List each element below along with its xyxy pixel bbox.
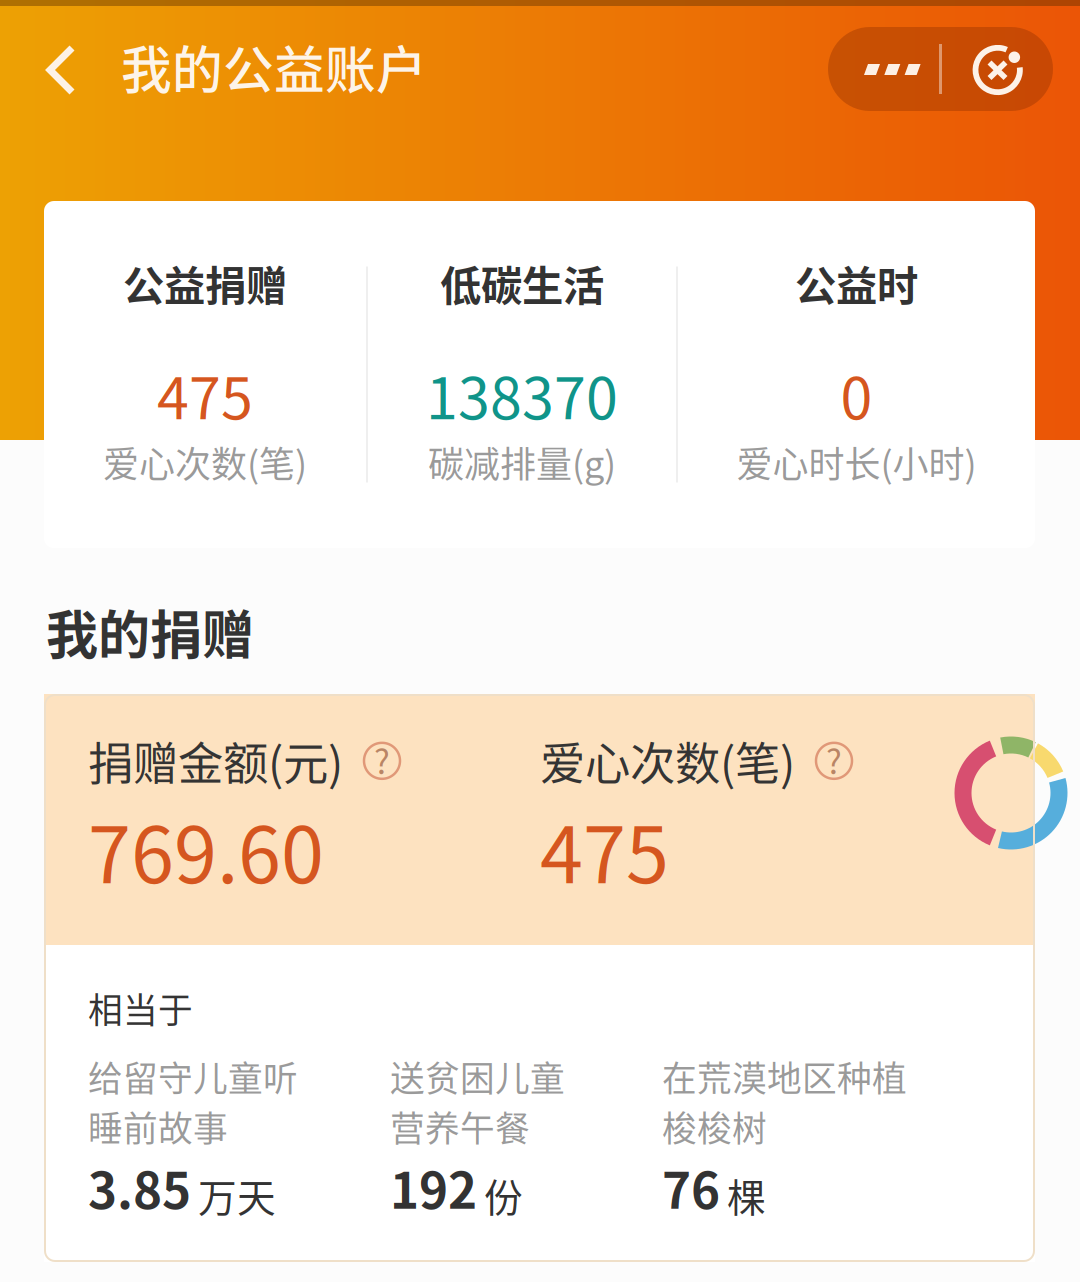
- staticText: 万天: [198, 1167, 276, 1223]
- staticText: 梭梭树: [662, 1101, 767, 1152]
- staticText: 爱心时长(小时): [736, 436, 976, 488]
- staticText: 送贫困儿童: [390, 1051, 565, 1101]
- staticText: 棵: [727, 1167, 766, 1223]
- staticText: 相当于: [88, 983, 193, 1033]
- staticText: 捐赠金额(元): [88, 728, 343, 794]
- staticText: 138370: [426, 353, 618, 436]
- button[interactable]: More options: [828, 27, 1053, 111]
- staticText: 192: [390, 1152, 477, 1223]
- staticText: 份: [484, 1167, 523, 1223]
- staticText: 475: [540, 794, 669, 906]
- staticText: 76: [662, 1152, 720, 1223]
- staticText: 睡前故事: [88, 1101, 228, 1152]
- staticText: 在荒漠地区种植: [662, 1051, 907, 1101]
- button[interactable]: Back: [23, 25, 101, 115]
- staticText: ?: [826, 736, 842, 784]
- staticText: 公益捐赠: [123, 253, 287, 313]
- button[interactable]: About 捐赠金额(元): [363, 742, 401, 780]
- staticText: 0: [840, 353, 872, 436]
- staticText: 我的捐赠: [46, 594, 254, 669]
- staticText: 475: [157, 353, 253, 436]
- staticText: 爱心次数(笔): [103, 436, 307, 488]
- button[interactable]: About 爱心次数(笔): [815, 742, 853, 780]
- staticText: 爱心次数(笔): [540, 728, 795, 794]
- staticText: 营养午餐: [390, 1101, 530, 1152]
- staticText: 3.85: [88, 1152, 191, 1223]
- staticText: 碳减排量(g): [428, 436, 616, 488]
- staticText: 769.60: [88, 794, 324, 906]
- staticText: ?: [374, 736, 390, 784]
- staticText: 公益时: [795, 253, 918, 313]
- staticText: 低碳生活: [440, 253, 604, 313]
- staticText: 我的公益账户: [121, 30, 427, 103]
- staticText: 给留守儿童听: [88, 1051, 298, 1101]
